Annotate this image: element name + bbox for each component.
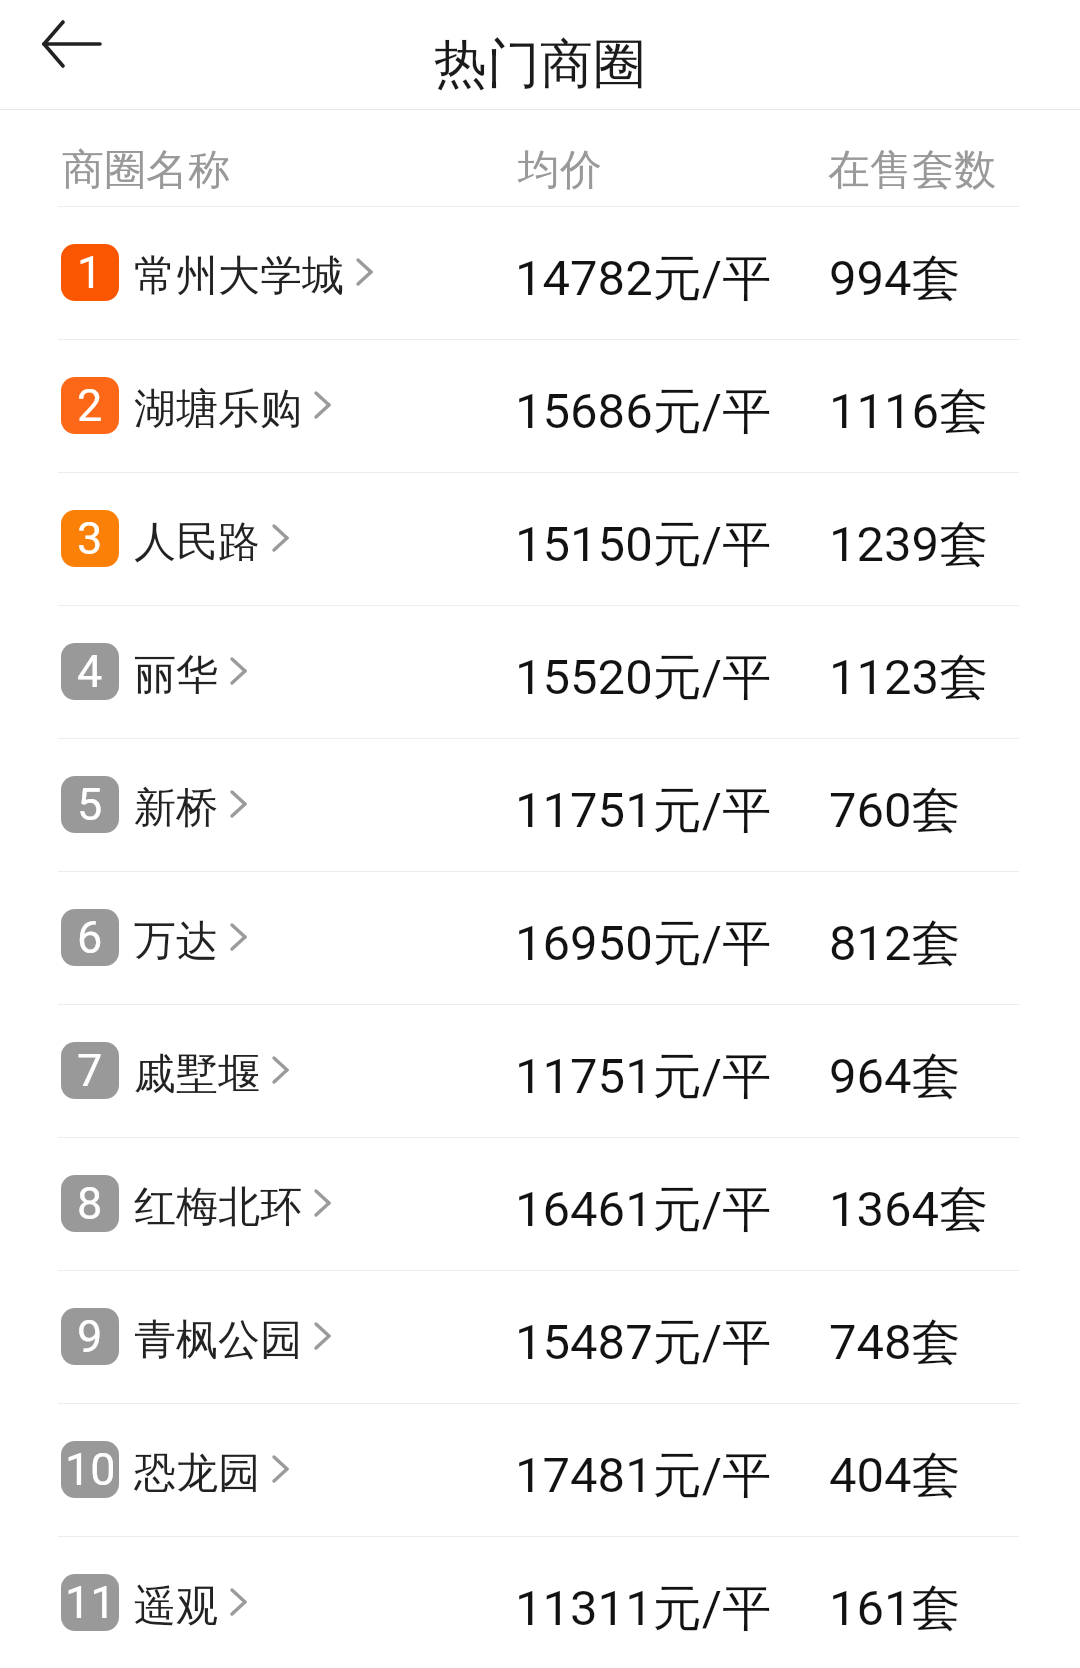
staticText: 4 [77,645,103,698]
button[interactable]: 5 [0,739,1080,871]
staticText: 5 [77,778,103,831]
staticText: 10 [65,1443,116,1496]
staticText: 11311元/平 [515,1578,771,1640]
staticText: 812套 [829,913,961,975]
staticText: 9 [77,1310,103,1363]
staticText: 1364套 [829,1179,989,1241]
staticText: 在售套数 [828,144,996,197]
button[interactable]: 8 [0,1138,1080,1270]
staticText: 1116套 [829,381,989,443]
staticText: 2 [77,379,103,432]
staticText: 14782元/平 [515,248,771,310]
staticText: 15150元/平 [515,514,771,576]
staticText: 161套 [829,1578,961,1640]
button[interactable]: 10 [0,1404,1080,1536]
staticText: 湖塘乐购 [134,383,302,436]
staticText: 遥观 [134,1580,218,1633]
staticText: 748套 [829,1312,961,1374]
staticText: 1 [77,246,103,299]
staticText: 均价 [518,144,602,197]
button[interactable]: Back [16,0,128,87]
staticText: 丽华 [134,649,218,702]
staticText: 7 [77,1044,103,1097]
button[interactable]: 1 [0,207,1080,339]
button[interactable]: 7 [0,1005,1080,1137]
staticText: 1239套 [829,514,989,576]
staticText: 人民路 [134,516,260,569]
staticText: 热门商圈 [434,31,646,98]
staticText: 青枫公园 [134,1314,302,1367]
staticText: 15520元/平 [515,647,771,709]
staticText: 15686元/平 [515,381,771,443]
staticText: 760套 [829,780,961,842]
button[interactable]: 4 [0,606,1080,738]
staticText: 新桥 [134,782,218,835]
staticText: 戚墅堰 [134,1048,260,1101]
staticText: 404套 [829,1445,961,1507]
staticText: 常州大学城 [134,250,344,303]
staticText: 恐龙园 [134,1447,260,1500]
button[interactable]: 3 [0,473,1080,605]
staticText: 11 [65,1576,116,1629]
button[interactable]: 2 [0,340,1080,472]
staticText: 红梅北环 [134,1181,302,1234]
staticText: 6 [77,911,103,964]
staticText: 商圈名称 [62,144,230,197]
staticText: 15487元/平 [515,1312,771,1374]
staticText: 16461元/平 [515,1179,771,1241]
staticText: 964套 [829,1046,961,1108]
staticText: 8 [77,1177,103,1230]
staticText: 11751元/平 [515,780,771,842]
staticText: 16950元/平 [515,913,771,975]
staticText: 万达 [134,915,218,968]
staticText: 3 [77,512,103,565]
staticText: 1123套 [829,647,989,709]
button[interactable]: 11 [0,1537,1080,1668]
button[interactable]: 9 [0,1271,1080,1403]
staticText: 17481元/平 [515,1445,771,1507]
staticText: 11751元/平 [515,1046,771,1108]
staticText: 994套 [829,248,961,310]
button[interactable]: 6 [0,872,1080,1004]
